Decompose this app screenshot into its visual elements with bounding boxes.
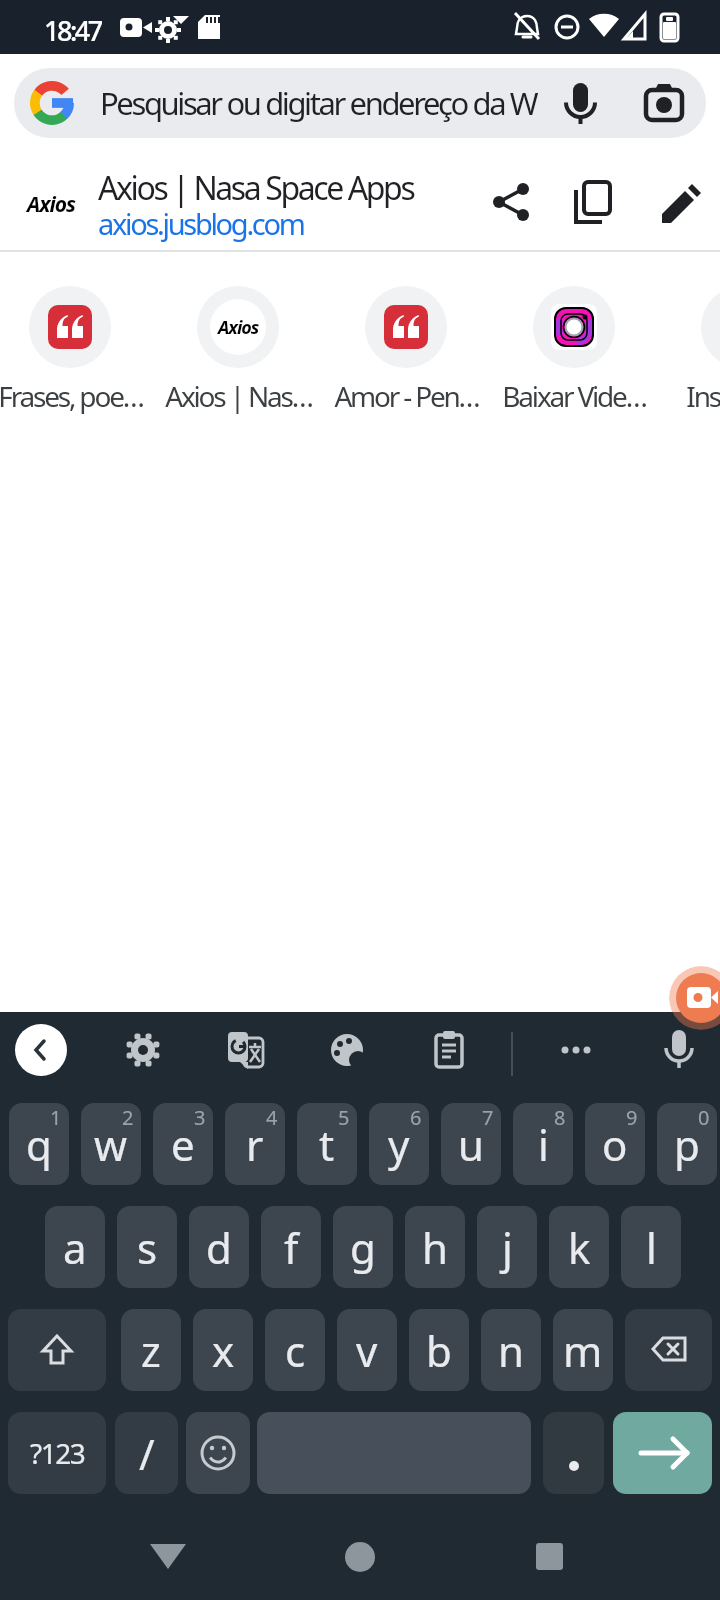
staticText: 2 xyxy=(122,1104,134,1131)
button[interactable] xyxy=(543,1412,604,1494)
staticText: s xyxy=(137,1219,158,1276)
button[interactable] xyxy=(140,1528,196,1584)
button[interactable] xyxy=(29,286,111,368)
staticText: t xyxy=(319,1116,335,1173)
staticText: 3 xyxy=(194,1104,206,1131)
button[interactable]: n xyxy=(481,1309,541,1391)
button[interactable]: l xyxy=(621,1206,681,1288)
staticText: q xyxy=(26,1116,52,1173)
staticText: ?123 xyxy=(30,1434,85,1472)
button[interactable] xyxy=(8,1309,106,1391)
staticText: 8 xyxy=(554,1104,566,1131)
staticText: Instagra… xyxy=(686,377,720,415)
staticText: Frases, poe… xyxy=(0,377,143,415)
button[interactable]: z xyxy=(121,1309,181,1391)
staticText: d xyxy=(206,1219,232,1276)
staticText: 0 xyxy=(698,1104,710,1131)
button[interactable] xyxy=(625,1309,712,1391)
button[interactable]: / xyxy=(115,1412,178,1494)
button[interactable]: b xyxy=(409,1309,469,1391)
button[interactable]: y xyxy=(369,1103,429,1185)
button[interactable] xyxy=(669,966,720,1030)
button[interactable]: m xyxy=(553,1309,613,1391)
button[interactable]: f xyxy=(261,1206,321,1288)
staticText: w xyxy=(94,1116,128,1173)
staticText: axios.jusblog.com xyxy=(98,204,304,243)
button[interactable] xyxy=(613,1412,712,1494)
button[interactable] xyxy=(332,1528,388,1584)
button[interactable] xyxy=(550,1024,602,1076)
staticText: x xyxy=(212,1322,235,1379)
staticText: i xyxy=(538,1116,549,1173)
button[interactable] xyxy=(117,1024,169,1076)
staticText: Amor - Pen… xyxy=(334,377,479,415)
button[interactable]: h xyxy=(405,1206,465,1288)
button[interactable]: ?123 xyxy=(8,1412,106,1494)
button[interactable]: r xyxy=(225,1103,285,1185)
button[interactable] xyxy=(653,1024,705,1076)
staticText: c xyxy=(285,1322,306,1379)
button[interactable] xyxy=(321,1024,373,1076)
button[interactable]: d xyxy=(189,1206,249,1288)
button[interactable]: g xyxy=(333,1206,393,1288)
staticText: g xyxy=(350,1219,376,1276)
staticText: 5 xyxy=(338,1104,350,1131)
staticText: r xyxy=(246,1116,264,1173)
button[interactable] xyxy=(220,1024,272,1076)
button[interactable]: w xyxy=(81,1103,141,1185)
staticText: Axios xyxy=(218,315,259,340)
staticText: a xyxy=(63,1219,87,1276)
staticText: l xyxy=(646,1219,657,1276)
button[interactable]: e xyxy=(153,1103,213,1185)
button[interactable] xyxy=(423,1024,475,1076)
staticText: e xyxy=(171,1116,195,1173)
button[interactable] xyxy=(533,286,615,368)
button[interactable]: j xyxy=(477,1206,537,1288)
staticText: / xyxy=(139,1425,155,1482)
staticText: Axios | Nasa Space Apps xyxy=(98,166,414,210)
staticText: 9 xyxy=(626,1104,638,1131)
button[interactable] xyxy=(521,1528,577,1584)
staticText: p xyxy=(674,1116,700,1173)
staticText: o xyxy=(602,1116,628,1173)
staticText: u xyxy=(458,1116,484,1173)
button[interactable] xyxy=(365,286,447,368)
button[interactable]: i xyxy=(513,1103,573,1185)
button[interactable] xyxy=(15,1024,67,1076)
button[interactable]: u xyxy=(441,1103,501,1185)
staticText: 18:47 xyxy=(44,12,101,49)
staticText: v xyxy=(356,1322,378,1379)
button[interactable] xyxy=(701,286,720,368)
staticText: 7 xyxy=(482,1104,494,1131)
staticText: m xyxy=(563,1322,603,1379)
staticText: Axios | Nas… xyxy=(165,377,312,415)
button[interactable]: c xyxy=(265,1309,325,1391)
button[interactable]: k xyxy=(549,1206,609,1288)
button[interactable]: a xyxy=(45,1206,105,1288)
button[interactable]: Axios xyxy=(0,138,720,250)
staticText: 1 xyxy=(50,1104,62,1131)
button[interactable]: s xyxy=(117,1206,177,1288)
staticText: 4 xyxy=(266,1104,278,1131)
staticText: h xyxy=(422,1219,448,1276)
staticText: j xyxy=(502,1219,513,1276)
staticText: Pesquisar ou digitar endereço da W xyxy=(100,82,537,124)
staticText: k xyxy=(568,1219,591,1276)
button[interactable]: Axios xyxy=(197,286,279,368)
staticText: f xyxy=(284,1219,299,1276)
staticText: y xyxy=(388,1116,410,1173)
button[interactable]: Pesquisar ou digitar endereço da W xyxy=(14,68,706,138)
button[interactable]: t xyxy=(297,1103,357,1185)
staticText: Baixar Vide… xyxy=(502,377,646,415)
staticText: z xyxy=(141,1322,161,1379)
button[interactable]: o xyxy=(585,1103,645,1185)
button[interactable]: x xyxy=(193,1309,253,1391)
staticText: 6 xyxy=(410,1104,422,1131)
button[interactable]: p xyxy=(657,1103,717,1185)
button[interactable] xyxy=(186,1412,250,1494)
staticText: n xyxy=(498,1322,524,1379)
button[interactable]: q xyxy=(9,1103,69,1185)
button[interactable] xyxy=(257,1412,531,1494)
button[interactable]: v xyxy=(337,1309,397,1391)
staticText: Axios xyxy=(27,190,75,219)
